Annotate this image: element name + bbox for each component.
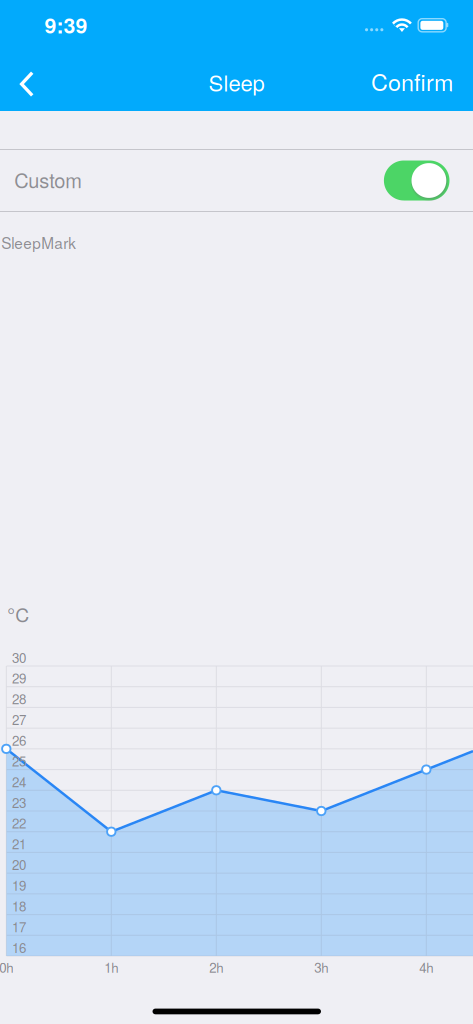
- staticText: 29: [12, 668, 26, 687]
- staticText: 0h: [0, 957, 13, 976]
- staticText: 27: [12, 710, 26, 729]
- staticText: 1h: [104, 957, 118, 976]
- staticText: 17: [12, 917, 26, 936]
- staticText: Custom: [14, 165, 82, 194]
- staticText: Confirm: [371, 64, 453, 98]
- staticText: 24: [12, 772, 26, 791]
- staticText: 21: [12, 834, 26, 853]
- staticText: 20: [12, 855, 26, 874]
- staticText: Sleep: [208, 66, 264, 98]
- staticText: 22: [12, 813, 26, 832]
- button[interactable]: Confirm: [361, 59, 462, 103]
- staticText: 28: [12, 689, 26, 708]
- staticText: 3h: [314, 957, 328, 976]
- staticText: 16: [12, 938, 26, 957]
- staticText: 9:39: [44, 10, 87, 40]
- staticText: 2h: [209, 957, 223, 976]
- staticText: 23: [12, 793, 26, 812]
- staticText: 19: [12, 875, 26, 895]
- staticText: 25: [12, 751, 26, 770]
- staticText: SleepMark: [1, 231, 76, 253]
- staticText: °C: [7, 600, 29, 628]
- staticText: 18: [12, 896, 26, 915]
- staticText: 30: [12, 648, 26, 667]
- button[interactable]: Sleep: [176, 60, 296, 104]
- button[interactable]: Back: [0, 58, 54, 108]
- staticText: 4h: [419, 957, 433, 976]
- staticText: 26: [12, 730, 26, 750]
- button[interactable]: Custom: [0, 150, 473, 211]
